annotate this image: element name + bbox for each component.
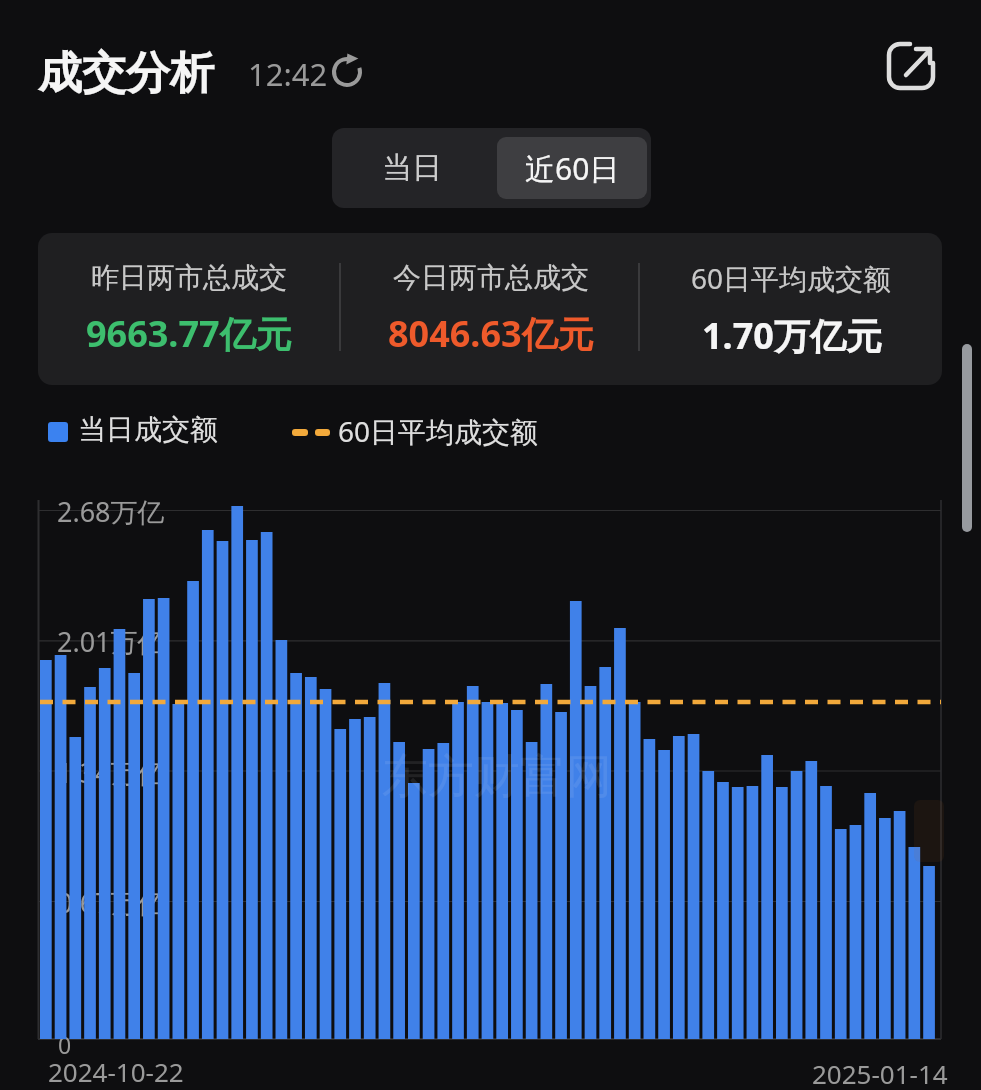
staticText: 60日平均成交额 [338, 412, 539, 450]
staticText: 昨日两市总成交 [91, 260, 287, 295]
button[interactable]: 当日 [332, 128, 492, 208]
staticText: 12:42 [248, 53, 328, 95]
staticText: 今日两市总成交 [393, 260, 589, 295]
staticText: 2.68万亿 [57, 493, 165, 530]
staticText: 1.34万亿 [57, 754, 165, 791]
staticText: 0 [58, 1029, 72, 1060]
staticText: 近60日 [525, 148, 620, 189]
staticText: 2025-01-14 [812, 1056, 948, 1090]
staticText: 1.70万亿元 [702, 311, 882, 360]
staticText: 当日成交额 [78, 412, 218, 447]
staticText: 8046.63亿元 [388, 309, 594, 358]
button[interactable] [884, 38, 940, 94]
staticText: 2.01万亿 [57, 623, 165, 660]
button[interactable]: 近60日 [497, 137, 647, 199]
staticText: 成交分析 [38, 46, 214, 101]
button[interactable] [330, 53, 366, 89]
staticText: 2024-10-22 [48, 1054, 184, 1089]
staticText: 60日平均成交额 [691, 259, 892, 297]
staticText: 9663.77亿元 [86, 309, 292, 358]
staticText: 当日 [382, 149, 442, 187]
staticText: 东方财富网 [382, 748, 612, 806]
staticText: 0.67万亿 [57, 884, 165, 921]
